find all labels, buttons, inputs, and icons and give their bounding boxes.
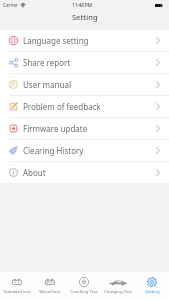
- staticText: WaveForm: [39, 288, 61, 294]
- staticText: Charging Test: [104, 288, 132, 294]
- button[interactable]: Charging Test: [101, 272, 135, 300]
- button[interactable]: WaveForm: [33, 272, 67, 300]
- button[interactable]: Setting: [135, 272, 169, 300]
- button[interactable]: Cranking Test: [67, 272, 101, 300]
- button[interactable]: Problem of feedback: [0, 96, 169, 117]
- button[interactable]: Firmware update: [0, 118, 169, 139]
- staticText: 11:48 PM: [72, 2, 92, 8]
- staticText: User manual: [23, 79, 71, 90]
- button[interactable]: User manual: [0, 74, 169, 95]
- button[interactable]: Clearing History: [0, 140, 169, 161]
- staticText: Carrier: [3, 2, 18, 8]
- button[interactable]: About: [0, 162, 169, 183]
- staticText: Language setting: [23, 35, 89, 46]
- staticText: Setting: [145, 288, 160, 294]
- button[interactable]: Language setting: [0, 30, 169, 51]
- staticText: Problem of feedback: [23, 101, 101, 112]
- staticText: Standard test: [3, 288, 31, 294]
- button[interactable]: Standard test: [0, 272, 33, 300]
- staticText: About: [23, 167, 46, 178]
- staticText: Share report: [23, 57, 71, 68]
- button[interactable]: Share report: [0, 52, 169, 73]
- staticText: Clearing History: [23, 145, 84, 156]
- staticText: Cranking Test: [70, 288, 98, 294]
- staticText: Setting: [72, 12, 98, 22]
- staticText: Firmware update: [23, 123, 88, 134]
